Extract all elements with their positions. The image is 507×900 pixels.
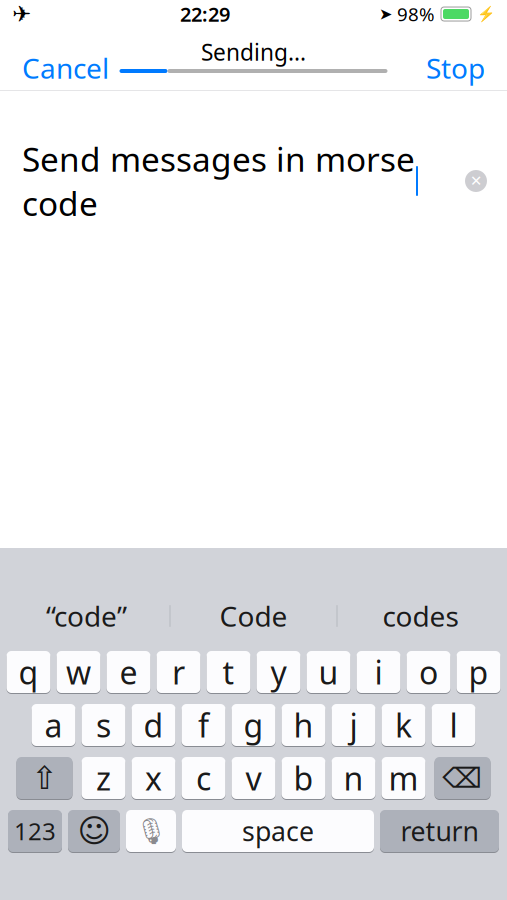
button[interactable]: s [81, 704, 125, 746]
button[interactable]: r [156, 651, 200, 693]
staticText: x [145, 757, 162, 799]
staticText: Cancel [22, 49, 109, 87]
button[interactable]: n [331, 757, 375, 799]
staticText: c [196, 757, 211, 799]
staticText: 98% [397, 2, 435, 26]
staticText: q [18, 651, 38, 693]
staticText: m [388, 757, 418, 799]
button[interactable]: Delete [434, 757, 490, 799]
staticText: a [44, 704, 62, 746]
button[interactable]: w [56, 651, 100, 693]
button[interactable]: c [181, 757, 225, 799]
staticText: ✕ [470, 173, 482, 189]
staticText: ➤ [379, 5, 392, 23]
button[interactable]: e [106, 651, 150, 693]
button[interactable]: l [431, 704, 475, 746]
staticText: ⇧ [31, 760, 58, 796]
button[interactable]: Emoji [68, 810, 120, 852]
staticText: l [449, 704, 457, 746]
staticText: 🎙 [135, 816, 167, 845]
staticText: return [400, 813, 478, 849]
staticText: t [222, 651, 234, 693]
staticText: n [343, 757, 363, 799]
staticText: e [119, 651, 137, 693]
staticText: o [419, 651, 438, 693]
staticText: ⚡ [477, 6, 495, 22]
staticText: i [374, 651, 382, 693]
button[interactable]: p [456, 651, 500, 693]
staticText: g [243, 704, 263, 746]
button[interactable]: q [6, 651, 50, 693]
button[interactable]: k [381, 704, 425, 746]
staticText: z [96, 757, 111, 799]
button[interactable]: z [81, 757, 125, 799]
staticText: f [198, 704, 209, 746]
button[interactable]: v [231, 757, 275, 799]
staticText: “code” [46, 597, 127, 635]
button[interactable]: Cancel [8, 39, 123, 97]
button[interactable]: Clear text [459, 164, 493, 198]
staticText: ⌫ [442, 762, 482, 794]
button[interactable]: a [31, 704, 75, 746]
button[interactable]: Shift [16, 757, 72, 799]
button[interactable]: codes [337, 590, 503, 642]
staticText: h [293, 704, 313, 746]
staticText: w [66, 651, 91, 693]
button[interactable]: g [231, 704, 275, 746]
staticText: p [468, 651, 488, 693]
button[interactable]: f [181, 704, 225, 746]
staticText: space [242, 813, 314, 849]
staticText: Stop [426, 49, 485, 87]
staticText: s [96, 704, 111, 746]
staticText: y [270, 651, 286, 693]
button[interactable]: return [380, 810, 499, 852]
button[interactable]: t [206, 651, 250, 693]
button[interactable]: y [256, 651, 300, 693]
button[interactable]: b [281, 757, 325, 799]
staticText: codes [382, 597, 458, 635]
staticText: k [395, 704, 412, 746]
staticText: v [245, 757, 261, 799]
button[interactable]: space [182, 810, 374, 852]
staticText: r [172, 651, 185, 693]
button[interactable]: h [281, 704, 325, 746]
staticText: 123 [14, 815, 56, 847]
staticText: 22:29 [180, 1, 230, 27]
button[interactable]: j [331, 704, 375, 746]
staticText: j [349, 704, 357, 746]
staticText: Code [219, 597, 287, 635]
button[interactable]: Code [170, 590, 336, 642]
staticText: ✈ [12, 1, 31, 27]
button[interactable]: u [306, 651, 350, 693]
button[interactable]: “code” [3, 590, 169, 642]
button[interactable]: Stop [412, 39, 499, 97]
button[interactable]: m [381, 757, 425, 799]
button[interactable]: d [131, 704, 175, 746]
button[interactable]: i [356, 651, 400, 693]
staticText: d [143, 704, 163, 746]
staticText: u [318, 651, 338, 693]
staticText: Send messages in morse code [22, 137, 415, 225]
button[interactable]: 123 [8, 810, 62, 852]
staticText: b [293, 757, 313, 799]
button[interactable]: x [131, 757, 175, 799]
staticText: Sending... [201, 37, 306, 67]
button[interactable]: o [406, 651, 450, 693]
button[interactable]: Dictation [126, 810, 176, 852]
staticText: ☺ [77, 813, 110, 849]
